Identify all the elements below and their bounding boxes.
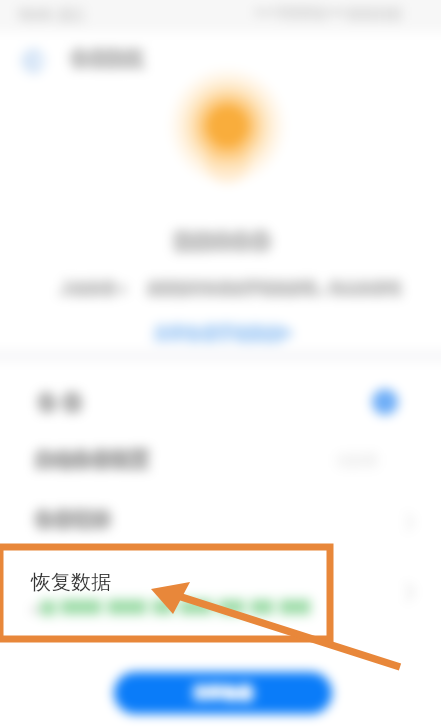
staticText: 立即备份手机数据>	[154, 322, 292, 344]
staticText: 恢复数据	[31, 570, 111, 595]
staticText: 备份记录	[37, 508, 113, 532]
staticText: •••• 中国移动 •••• ▮▮ ▮▮ ▮▮▮	[257, 4, 403, 20]
staticText: 立即备份手机数据>	[156, 320, 294, 342]
staticText: 12:45 周三	[20, 5, 87, 23]
staticText: 数据未备份	[175, 232, 270, 256]
staticText: 备份记录	[35, 506, 111, 530]
staticText: 您还没有备份过手机数据哦，快去备份吧	[148, 282, 400, 300]
staticText: ·	[33, 598, 37, 617]
staticText: •••• 中国移动 •••• ▮▮ ▮▮ ▮▮▮	[253, 2, 399, 18]
button[interactable]	[0, 432, 441, 490]
staticText: ·	[33, 600, 37, 619]
staticText: •••• 中国移动 •••• ▮▮ ▮▮ ▮▮▮	[253, 4, 399, 20]
staticText: 您还没有备份过手机数据哦，快去备份吧	[146, 280, 398, 298]
staticText: 12:45 周三	[16, 7, 83, 25]
staticText: 您还没有备份过手机数据哦，快去备份吧	[150, 278, 402, 296]
button[interactable]	[0, 374, 441, 432]
staticText: 上次备份：	[58, 278, 128, 296]
staticText: 备份记录	[37, 510, 113, 534]
staticText: 数据未备份	[173, 230, 268, 254]
button[interactable]: Back	[16, 44, 50, 78]
staticText: 备份恢复	[69, 46, 141, 69]
staticText: ·	[33, 602, 37, 621]
staticText: 备份恢复	[69, 50, 141, 73]
staticText: 12:45 周三	[18, 5, 85, 23]
staticText: ·	[31, 600, 35, 619]
staticText: 备份	[35, 389, 85, 413]
button[interactable]: 恢复数据	[24, 565, 140, 601]
staticText: 您还没有备份过手机数据哦，快去备份吧	[146, 282, 398, 300]
staticText: 备份恢复	[73, 46, 145, 69]
staticText: 备份记录	[33, 508, 109, 532]
staticText: 立即备份	[191, 686, 251, 705]
staticText: 立即备份	[191, 682, 251, 701]
staticText: 立即备份	[193, 682, 253, 701]
staticText: 12:45 周三	[18, 3, 85, 21]
staticText: 12:45 周三	[20, 7, 87, 25]
staticText: 备份	[33, 391, 83, 415]
staticText: 12:45 周三	[20, 3, 87, 21]
button[interactable]: 立即备份	[114, 672, 332, 714]
staticText: 立即备份手机数据>	[154, 324, 292, 346]
staticText: 备份恢复	[73, 50, 145, 73]
staticText: 备份恢复	[73, 48, 145, 71]
staticText: 立即备份手机数据>	[154, 320, 292, 342]
staticText: 立即备份手机数据>	[152, 324, 290, 346]
staticText: 备份	[37, 393, 87, 417]
staticText: 备份恢复	[69, 48, 141, 71]
button[interactable]	[0, 490, 441, 548]
staticText: 上次备份：	[60, 278, 130, 296]
staticText: 上次备份：	[60, 280, 130, 298]
staticText: 自动备份设置	[37, 446, 151, 470]
staticText: 自动备份设置	[37, 450, 151, 474]
button[interactable]	[0, 550, 441, 634]
staticText: 立即备份	[195, 682, 255, 701]
staticText: ·	[31, 598, 35, 617]
staticText: •••• 中国移动 •••• ▮▮ ▮▮ ▮▮▮	[257, 6, 403, 22]
staticText: 备份	[33, 389, 83, 413]
staticText: 备份恢复	[71, 50, 143, 73]
staticText: 您还没有备份过手机数据哦，快去备份吧	[150, 280, 402, 298]
staticText: 备份	[35, 391, 85, 415]
staticText: 数据未备份	[177, 228, 272, 252]
staticText: 上次备份：	[58, 280, 128, 298]
button[interactable]: 立即备份手机数据>	[150, 316, 310, 344]
staticText: 数据未备份	[177, 230, 272, 254]
staticText: 数据未备份	[175, 228, 270, 252]
staticText: 您还没有备份过手机数据哦，快去备份吧	[148, 278, 400, 296]
staticText: 您还没有备份过手机数据哦，快去备份吧	[150, 282, 402, 300]
staticText: 备份恢复	[71, 46, 143, 69]
staticText: 备份	[37, 389, 87, 413]
staticText: 上次备份：	[62, 282, 132, 300]
staticText: ·	[31, 602, 35, 621]
staticText: 数据未备份	[177, 232, 272, 256]
staticText: 备份恢复	[71, 48, 143, 71]
staticText: 您还没有备份过手机数据哦，快去备份吧	[148, 280, 400, 298]
staticText: 上次备份：	[58, 282, 128, 300]
staticText: ·	[35, 598, 39, 617]
staticText: 立即备份	[195, 684, 255, 703]
staticText: 自动备份设置	[35, 446, 149, 470]
staticText: 12:45 周三	[18, 7, 85, 25]
staticText: •••• 中国移动 •••• ▮▮ ▮▮ ▮▮▮	[253, 6, 399, 22]
staticText: 自动备份设置	[33, 450, 147, 474]
staticText: 立即备份手机数据>	[152, 322, 290, 344]
staticText: 12:45 周三	[16, 5, 83, 23]
staticText: 数据未备份	[175, 230, 270, 254]
staticText: 立即备份	[193, 684, 253, 703]
staticText: 数据未备份	[173, 228, 268, 252]
staticText: 备份	[35, 393, 85, 417]
staticText: 立即备份手机数据>	[156, 324, 294, 346]
staticText: 您还没有备份过手机数据哦，快去备份吧	[146, 278, 398, 296]
staticText: 立即备份	[195, 686, 255, 705]
staticText: 上次备份：	[62, 278, 132, 296]
staticText: ·	[35, 600, 39, 619]
staticText: •••• 中国移动 •••• ▮▮ ▮▮ ▮▮▮	[255, 4, 401, 20]
